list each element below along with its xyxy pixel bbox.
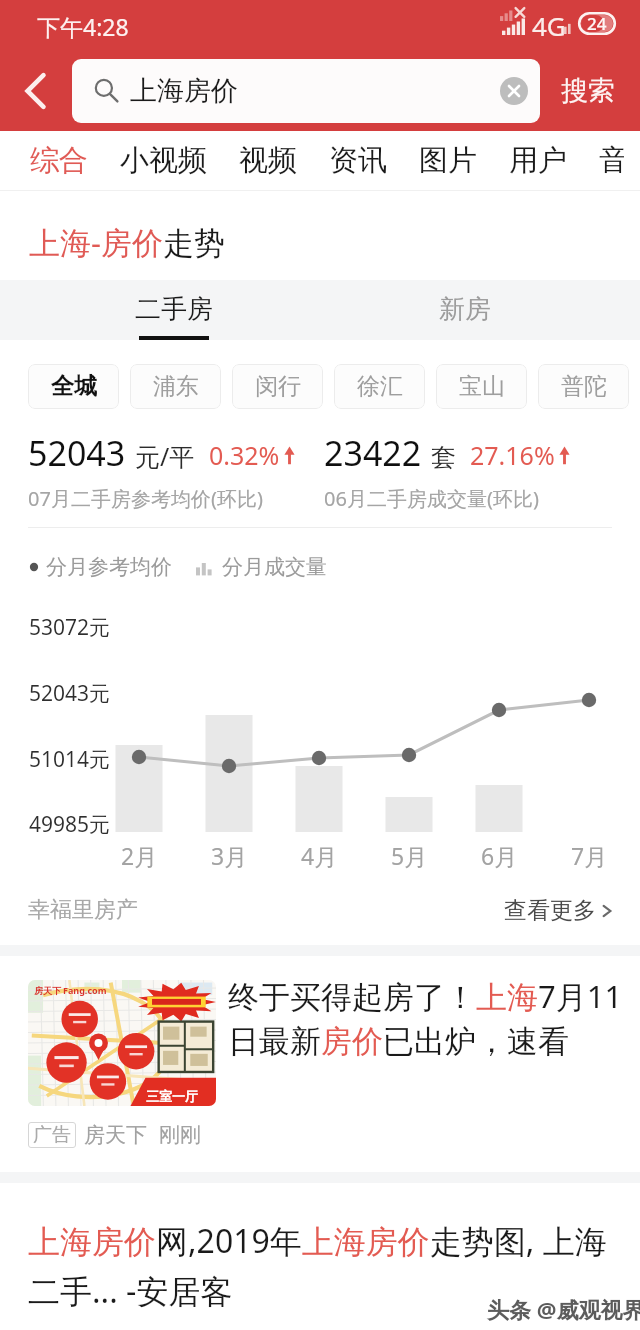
button[interactable]: 图片	[419, 131, 477, 190]
button[interactable]: 新房	[395, 280, 535, 340]
staticText: 全城	[51, 372, 97, 401]
staticText: 小视频	[120, 142, 207, 179]
staticText: 二手房	[135, 293, 213, 326]
staticText: 宝山	[459, 372, 505, 401]
button[interactable]: 视频	[239, 131, 297, 190]
staticText: 刚刚	[159, 1122, 201, 1148]
button[interactable]: 搜索	[544, 59, 632, 123]
button[interactable]: 查看更多	[504, 896, 613, 925]
staticText: 头条 @威观视界W	[487, 1294, 640, 1324]
button[interactable]: Back	[5, 60, 65, 122]
staticText: 房天下	[34, 985, 61, 996]
button[interactable]: 房天下	[28, 980, 216, 1106]
button[interactable]: 徐汇	[334, 364, 425, 409]
staticText: 52043元	[29, 679, 111, 708]
button[interactable]: 资讯	[329, 131, 387, 190]
staticText: 6月	[481, 840, 518, 871]
staticText: Fang.com	[63, 984, 107, 996]
staticText: 新房	[439, 293, 491, 326]
button[interactable]: 普陀	[538, 364, 629, 409]
staticText: 资讯	[329, 142, 387, 179]
staticText: 徐汇	[357, 372, 403, 401]
staticText: 49985元	[29, 810, 111, 839]
button[interactable]: Clear text	[494, 71, 534, 111]
staticText: 幸福里房产	[28, 896, 138, 924]
staticText: 06月二手房成交量(环比)	[324, 485, 539, 512]
staticText: 2月	[121, 840, 158, 871]
staticText: 27.16%	[470, 438, 555, 472]
staticText: 下午4:28	[37, 11, 129, 42]
staticText: 广告	[33, 1123, 71, 1147]
staticText: 元/平	[135, 439, 195, 473]
staticText: 三室一厅	[146, 1088, 198, 1104]
staticText: 分月参考均价	[46, 554, 172, 580]
staticText: 3月	[211, 840, 248, 871]
staticText: 24	[587, 12, 607, 35]
button[interactable]: 上海房价网,2019年上海房价走势图, 上海二手... -安居客	[28, 1219, 610, 1312]
staticText: 浦东	[153, 372, 199, 401]
staticText: 4G	[532, 8, 566, 43]
button[interactable]: 终于买得起房了！上海7月11日最新房价已出炉，速看	[228, 975, 628, 1061]
staticText: 0.32%	[209, 438, 280, 472]
staticText: 52043	[28, 430, 126, 476]
button[interactable]: 上海房价	[72, 59, 540, 123]
button[interactable]: 宝山	[436, 364, 527, 409]
staticText: 7月	[571, 840, 608, 871]
button[interactable]: 闵行	[232, 364, 323, 409]
staticText: 07月二手房参考均价(环比)	[28, 485, 263, 512]
staticText: 上海房价	[130, 74, 238, 108]
staticText: 闵行	[255, 372, 301, 401]
staticText: 5月	[391, 840, 428, 871]
staticText: 上海-房价走势	[29, 221, 225, 263]
staticText: 搜索	[561, 74, 615, 108]
button[interactable]: 音乐	[599, 131, 624, 190]
button[interactable]: 浦东	[130, 364, 221, 409]
staticText: 音乐	[599, 142, 624, 179]
button[interactable]: 全城	[28, 364, 119, 409]
staticText: 53072元	[29, 613, 111, 642]
button[interactable]: 综合	[30, 131, 88, 190]
staticText: 视频	[239, 142, 297, 179]
button[interactable]: 小视频	[120, 131, 207, 190]
staticText: 综合	[30, 142, 88, 179]
staticText: 分月成交量	[222, 554, 327, 580]
staticText: 图片	[419, 142, 477, 179]
staticText: 51014元	[29, 745, 111, 774]
staticText: 23422	[324, 430, 422, 476]
button[interactable]: 二手房	[104, 280, 244, 340]
button[interactable]: 用户	[509, 131, 567, 190]
staticText: 房天下	[84, 1122, 147, 1148]
staticText: 普陀	[561, 372, 607, 401]
staticText: 4月	[301, 840, 338, 871]
staticText: 查看更多	[504, 896, 596, 925]
staticText: 用户	[509, 142, 567, 179]
staticText: 套	[431, 442, 456, 473]
